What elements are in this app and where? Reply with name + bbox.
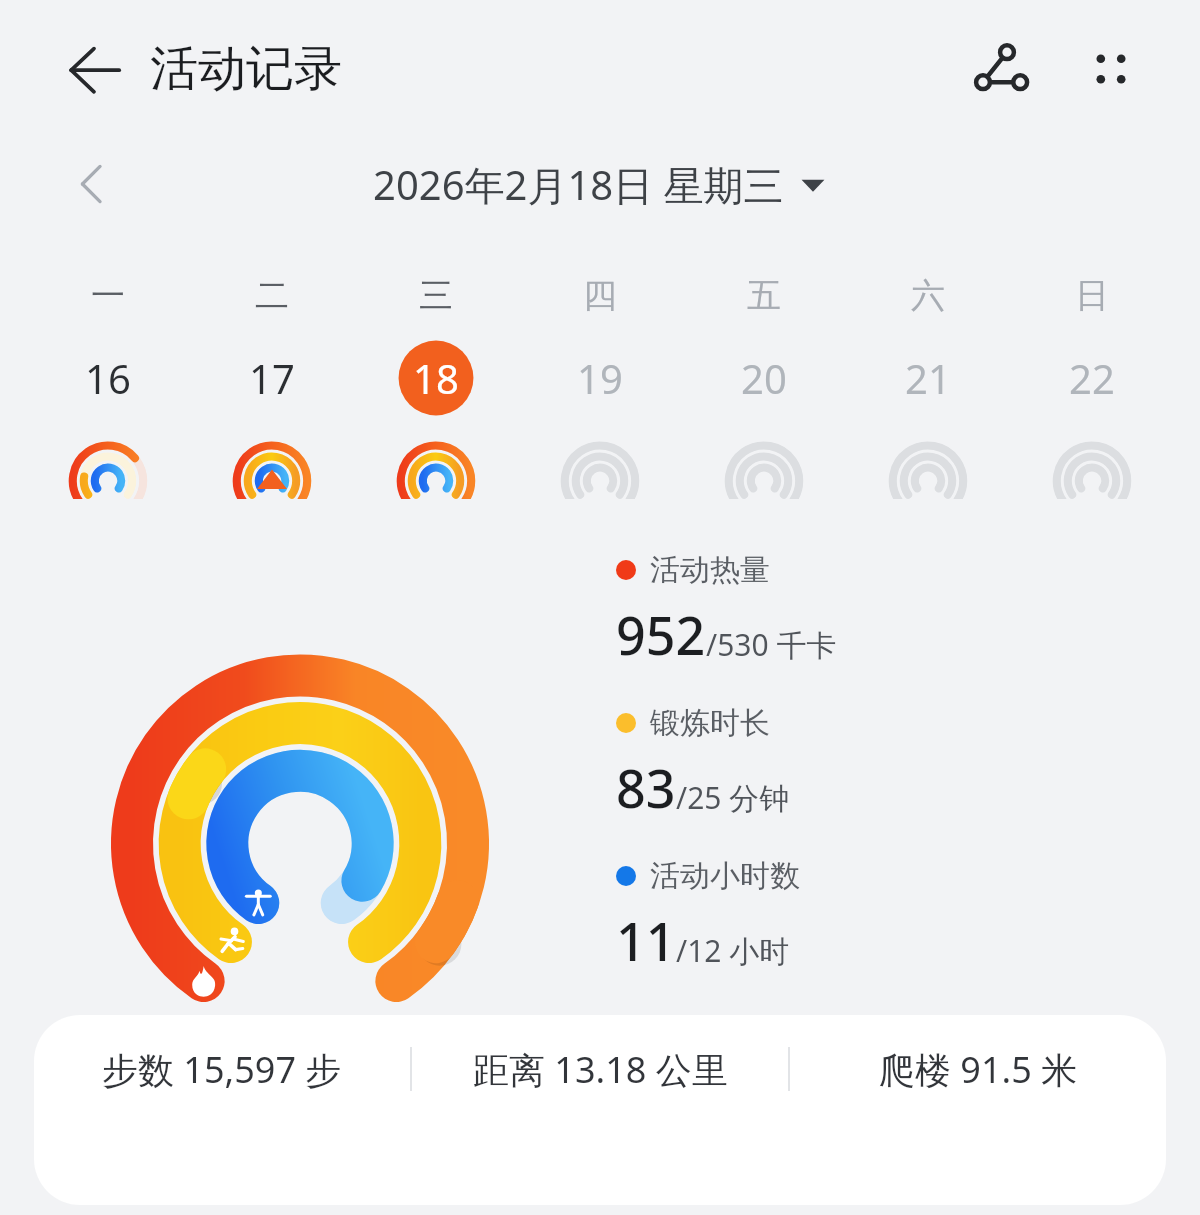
button[interactable]: Back: [56, 31, 132, 107]
staticText: 活动小时数: [650, 857, 800, 895]
staticText: 活动热量: [650, 551, 770, 589]
staticText: 三: [419, 274, 453, 317]
staticText: 83: [616, 752, 676, 823]
staticText: 19: [577, 351, 623, 405]
staticText: 五: [747, 274, 781, 317]
button[interactable]: Share: [958, 26, 1044, 112]
staticText: 11: [616, 905, 676, 976]
button[interactable]: 步数 15,597 步: [34, 1015, 1166, 1205]
staticText: 爬楼 91.5 米: [879, 1045, 1078, 1094]
button[interactable]: 五: [682, 274, 846, 499]
staticText: /25 分钟: [676, 777, 790, 818]
staticText: 日: [1075, 274, 1109, 317]
staticText: 四: [583, 274, 617, 317]
staticText: 20: [741, 351, 787, 405]
button[interactable]: 二: [190, 274, 354, 499]
staticText: 一: [91, 274, 125, 317]
button[interactable]: 四: [518, 274, 682, 499]
staticText: 步数 15,597 步: [102, 1045, 342, 1094]
staticText: 二: [255, 274, 289, 317]
staticText: 18: [413, 351, 459, 405]
button[interactable]: 日: [1010, 274, 1174, 499]
staticText: 17: [249, 351, 295, 405]
staticText: 16: [85, 351, 131, 405]
button[interactable]: Previous day: [58, 149, 128, 219]
staticText: 952: [616, 599, 706, 670]
staticText: 锻炼时长: [650, 704, 770, 742]
button[interactable]: 三: [354, 274, 518, 499]
staticText: 距离 13.18 公里: [473, 1045, 728, 1094]
staticText: 六: [911, 274, 945, 317]
staticText: 22: [1069, 351, 1115, 405]
staticText: 活动记录: [150, 39, 342, 99]
button[interactable]: 六: [846, 274, 1010, 499]
button[interactable]: 一: [26, 274, 190, 499]
staticText: 2026年2月18日 星期三: [373, 157, 784, 212]
button[interactable]: 2026年2月18日 星期三: [363, 151, 836, 218]
button[interactable]: More options: [1068, 26, 1154, 112]
staticText: /530 千卡: [706, 624, 837, 665]
staticText: 21: [905, 351, 951, 405]
staticText: /12 小时: [676, 930, 790, 971]
